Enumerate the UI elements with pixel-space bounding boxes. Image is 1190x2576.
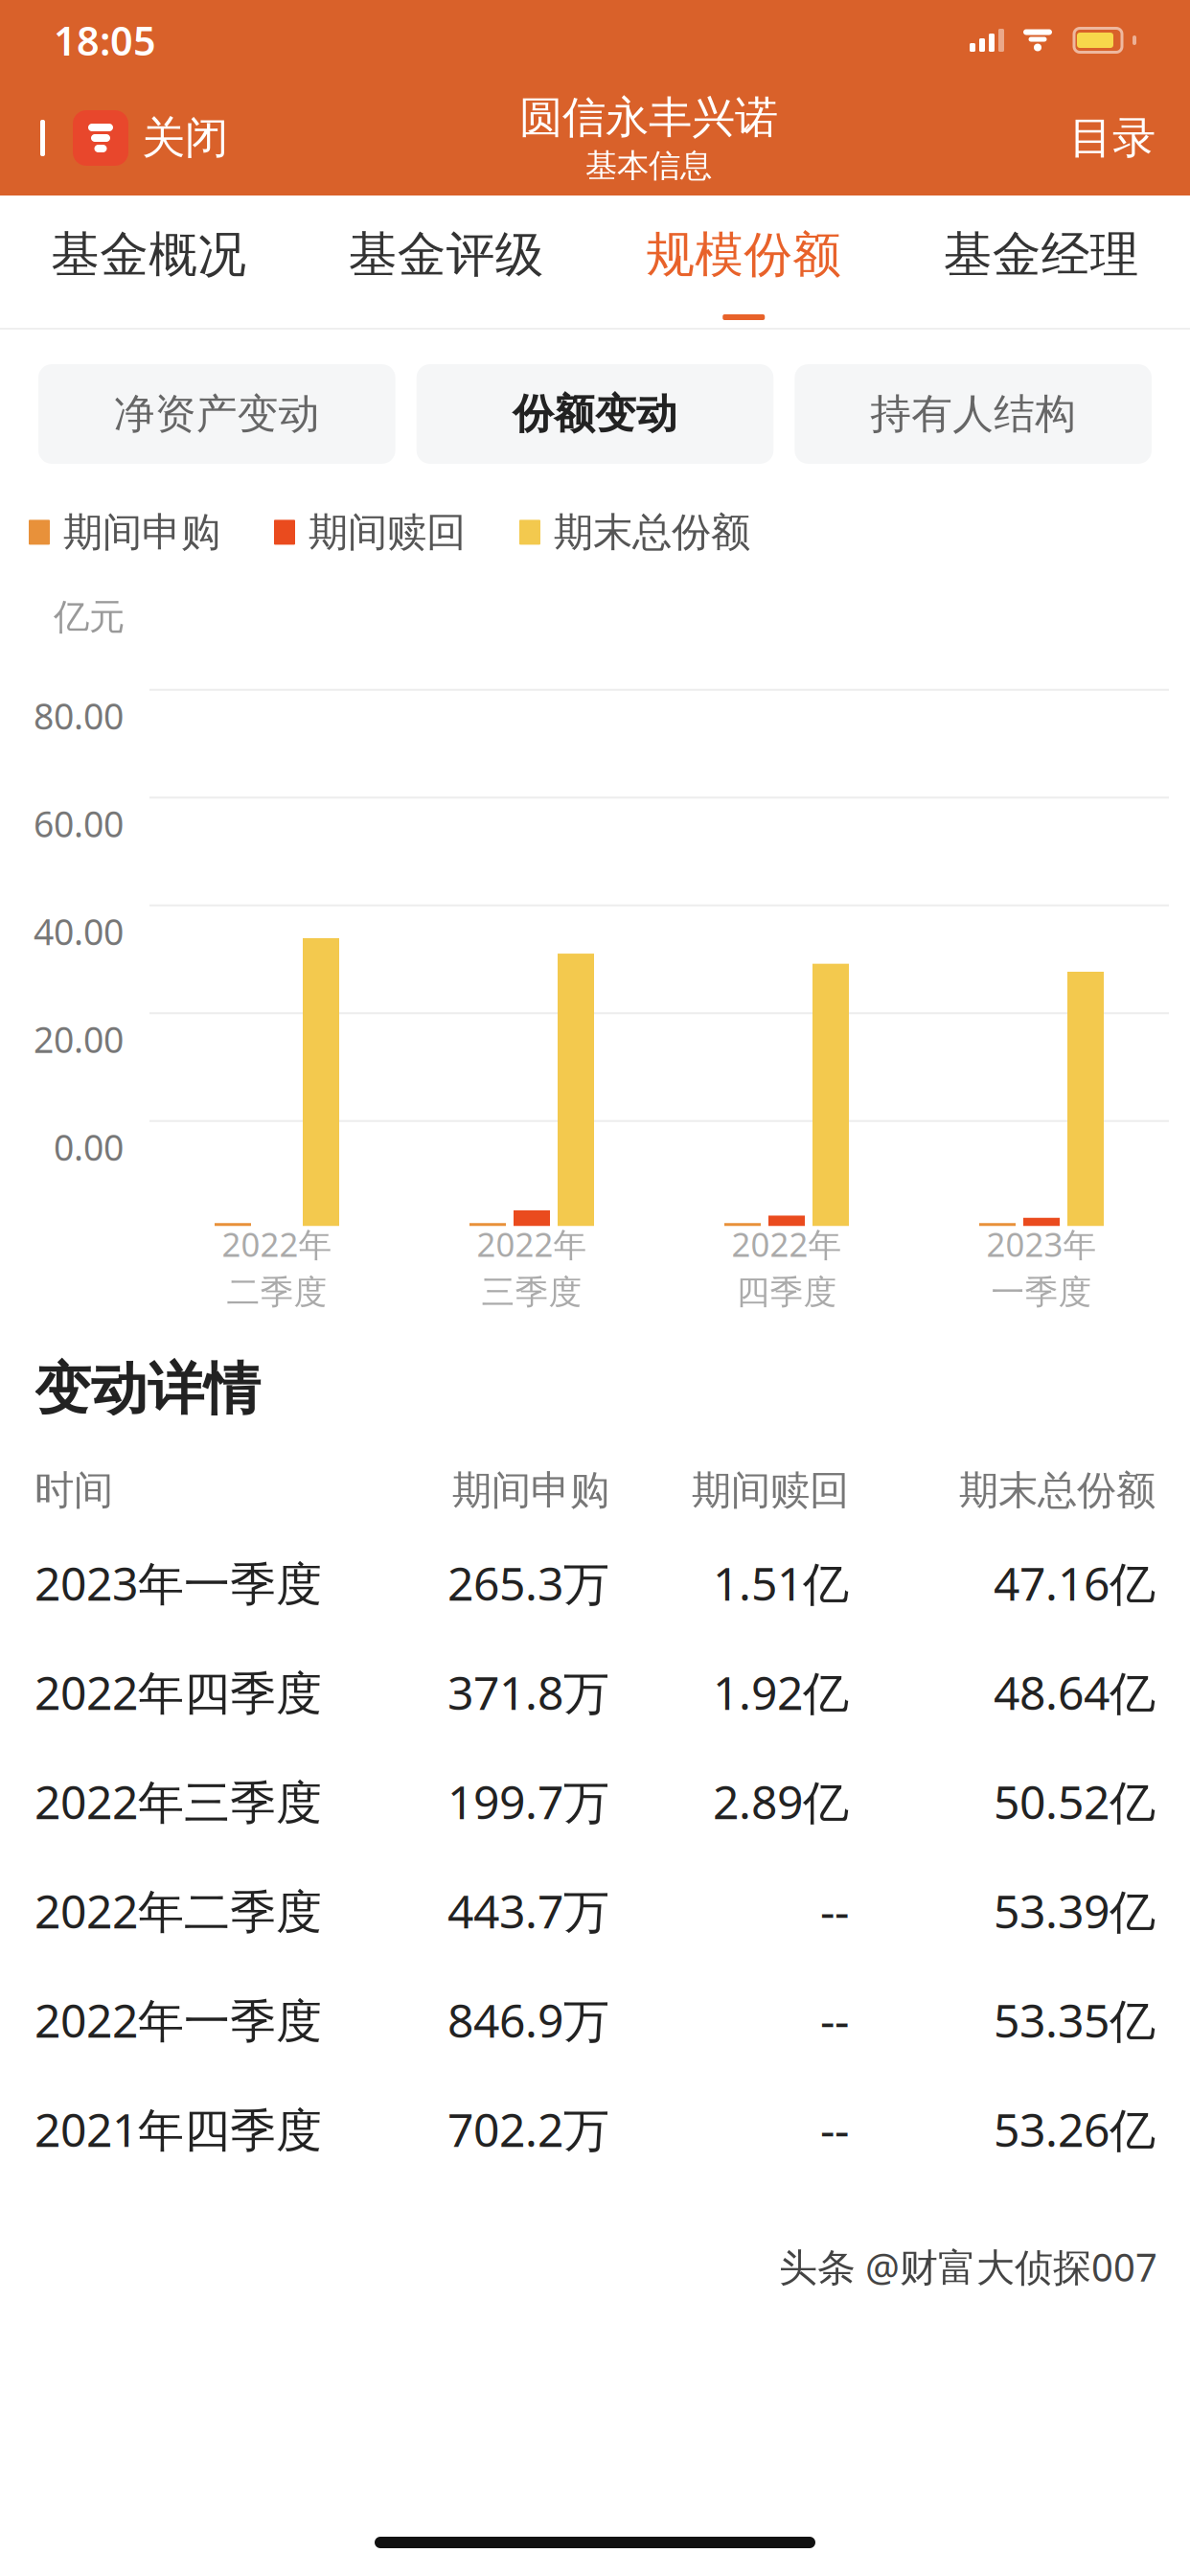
button[interactable]: 目录 — [1069, 111, 1156, 165]
staticText: 2022年 — [732, 1222, 842, 1266]
staticText: 基金经理 — [944, 225, 1139, 285]
staticText: 47.16亿 — [994, 1552, 1156, 1613]
staticText: 规模份额 — [646, 225, 841, 285]
button[interactable]: 关闭 — [34, 110, 228, 166]
button[interactable]: 规模份额 — [595, 195, 892, 330]
staticText: 圆信永丰兴诺 — [519, 91, 778, 144]
staticText: 时间 — [34, 1466, 113, 1515]
staticText: 80.00 — [34, 692, 124, 740]
staticText: 371.8万 — [447, 1661, 609, 1723]
staticText: 期间申购 — [452, 1466, 609, 1515]
button[interactable]: 基金评级 — [297, 195, 595, 330]
staticText: -- — [820, 1989, 849, 2050]
staticText: 2022年 — [477, 1222, 587, 1266]
staticText: 53.35亿 — [994, 1989, 1156, 2050]
staticText: 53.39亿 — [994, 1880, 1156, 1941]
staticText: 846.9万 — [447, 1989, 609, 2050]
staticText: 20.00 — [34, 1015, 124, 1063]
staticText: 期末总份额 — [959, 1466, 1156, 1515]
staticText: 2021年四季度 — [34, 2098, 322, 2160]
staticText: 四季度 — [736, 1272, 837, 1313]
staticText: 2.89亿 — [713, 1771, 849, 1832]
staticText: 199.7万 — [447, 1771, 609, 1832]
staticText: 2022年一季度 — [34, 1989, 322, 2050]
button[interactable]: 持有人结构 — [795, 364, 1152, 464]
staticText: 48.64亿 — [994, 1661, 1156, 1723]
staticText: 2022年四季度 — [34, 1661, 322, 1723]
staticText: 40.00 — [34, 908, 124, 955]
staticText: 60.00 — [34, 800, 124, 847]
staticText: 53.26亿 — [994, 2098, 1156, 2160]
staticText: 一季度 — [991, 1272, 1092, 1313]
staticText: 期间赎回 — [692, 1466, 849, 1515]
staticText: 702.2万 — [447, 2098, 609, 2160]
staticText: 2023年 — [986, 1222, 1097, 1266]
staticText: 1.92亿 — [713, 1661, 849, 1723]
staticText: 2022年二季度 — [34, 1880, 322, 1941]
staticText: -- — [820, 1880, 849, 1941]
staticText: -- — [820, 2098, 849, 2160]
staticText: 2023年一季度 — [34, 1552, 322, 1613]
staticText: 1.51亿 — [713, 1552, 849, 1613]
button[interactable]: 份额变动 — [416, 364, 774, 464]
staticText: 18:05 — [54, 14, 156, 67]
staticText: 关闭 — [142, 111, 228, 165]
button[interactable]: 净资产变动 — [38, 364, 395, 464]
staticText: 0.00 — [54, 1123, 124, 1171]
button[interactable]: 基金概况 — [0, 195, 297, 330]
staticText: 265.3万 — [447, 1552, 609, 1613]
staticText: 50.52亿 — [994, 1771, 1156, 1832]
staticText: 2022年 — [222, 1222, 332, 1266]
staticText: 三季度 — [481, 1272, 582, 1313]
staticText: 亿元 — [54, 595, 125, 639]
staticText: 期间申购 — [63, 508, 220, 557]
staticText: 基本信息 — [585, 146, 712, 185]
staticText: 443.7万 — [447, 1880, 609, 1941]
staticText: 2022年三季度 — [34, 1771, 322, 1832]
staticText: 二季度 — [227, 1272, 327, 1313]
staticText: 头条 @财富大侦探007 — [779, 2241, 1157, 2292]
staticText: 份额变动 — [513, 389, 677, 439]
staticText: 持有人结构 — [870, 389, 1076, 439]
staticText: 目录 — [1069, 111, 1156, 165]
staticText: 期末总份额 — [554, 508, 750, 557]
staticText: 期间赎回 — [309, 508, 466, 557]
staticText: 净资产变动 — [114, 389, 320, 439]
staticText: 基金概况 — [51, 225, 246, 285]
staticText: 基金评级 — [349, 225, 544, 285]
button[interactable]: 基金经理 — [892, 195, 1190, 330]
staticText: 变动详情 — [34, 1355, 261, 1424]
